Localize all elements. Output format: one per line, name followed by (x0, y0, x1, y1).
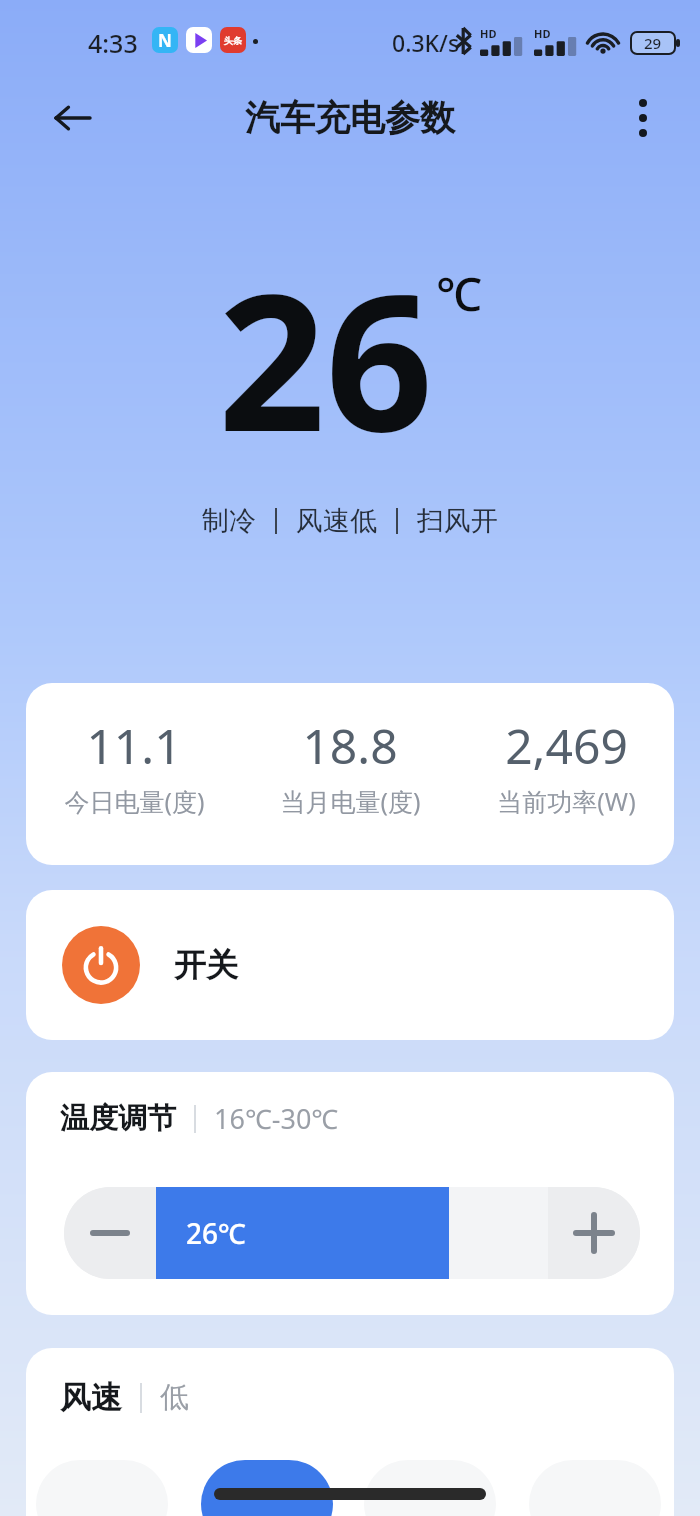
staticText: 风速低 (296, 504, 377, 538)
button[interactable]: Decrease temperature (64, 1187, 156, 1279)
staticText: N (158, 29, 172, 52)
staticText: 11.1 (86, 713, 182, 778)
button[interactable]: Back (34, 80, 110, 156)
staticText: 温度调节 (60, 1100, 176, 1137)
staticText: 26℃ (186, 1214, 246, 1252)
staticText: HD (480, 26, 497, 41)
staticText: 29 (644, 33, 662, 53)
staticText: 18.8 (302, 713, 398, 778)
staticText: HD (534, 26, 551, 41)
button[interactable]: Increase temperature (548, 1187, 640, 1279)
button[interactable]: Fan speed level 3 (364, 1460, 496, 1516)
staticText: 制冷 (202, 504, 256, 538)
staticText: 风速 (60, 1378, 122, 1417)
staticText: 16℃-30℃ (214, 1100, 339, 1137)
button[interactable]: More options (608, 83, 678, 153)
staticText: 低 (160, 1379, 189, 1416)
staticText: 扫风开 (417, 504, 498, 538)
staticText: 4:33 (88, 26, 138, 60)
button[interactable]: 开关 (26, 890, 674, 1040)
button[interactable]: Fan speed level 2 (201, 1460, 333, 1516)
staticText: 当月电量(度) (280, 784, 421, 818)
staticText: 26 (218, 230, 434, 486)
staticText: 0.3K/s (392, 27, 460, 58)
staticText: 今日电量(度) (64, 784, 205, 818)
staticText: 头条 (224, 35, 242, 46)
staticText: ℃ (436, 262, 482, 325)
staticText: 开关 (174, 945, 238, 985)
staticText: 2,469 (505, 713, 628, 778)
staticText: 汽车充电参数 (245, 96, 455, 140)
staticText: 当前功率(W) (497, 784, 636, 818)
